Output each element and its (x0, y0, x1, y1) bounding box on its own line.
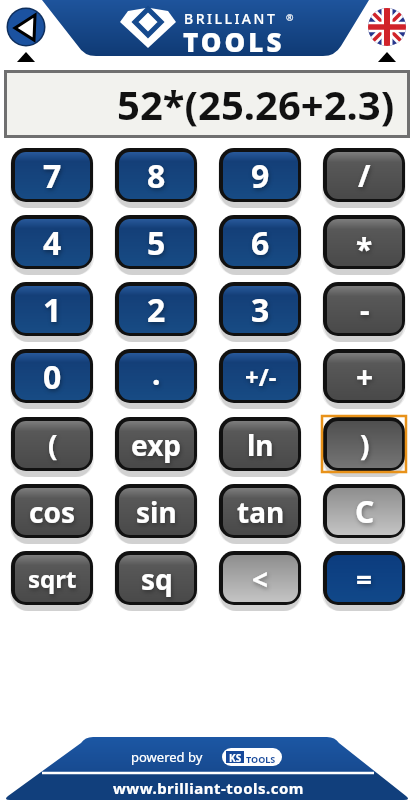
staticText: 8 (147, 154, 166, 198)
staticText: ® (286, 11, 294, 23)
staticText: exp (131, 426, 182, 464)
staticText: C (355, 491, 375, 532)
staticText: TOOLS (183, 24, 285, 59)
staticText: . (152, 353, 161, 394)
staticText: + (356, 356, 374, 397)
staticText: BRILLIANT (184, 9, 278, 28)
staticText: = (356, 560, 373, 598)
staticText: powered by (131, 748, 203, 766)
staticText: sq (141, 560, 173, 598)
staticText: < (252, 560, 269, 598)
staticText: 52*(25.26+2.3) (117, 77, 395, 131)
staticText: 4 (43, 221, 62, 265)
staticText: sqrt (28, 562, 77, 595)
staticText: cos (29, 493, 76, 531)
staticText: 1 (43, 288, 62, 332)
staticText: +/- (245, 360, 277, 393)
staticText: TOOLS (246, 753, 276, 765)
staticText: ) (360, 426, 370, 464)
staticText: ( (48, 426, 58, 464)
staticText: sin (136, 493, 177, 531)
staticText: / (358, 155, 371, 196)
staticText: 2 (147, 288, 166, 332)
staticText: 0 (43, 355, 62, 399)
staticText: 3 (251, 288, 270, 332)
staticText: 7 (43, 154, 62, 198)
staticText: * (356, 228, 373, 266)
staticText: 6 (251, 221, 270, 265)
staticText: www.brilliant-tools.com (113, 778, 304, 798)
staticText: - (360, 289, 370, 330)
staticText: tan (237, 493, 285, 531)
staticText: 5 (147, 221, 166, 265)
staticText: 9 (251, 154, 270, 198)
staticText: ln (247, 426, 274, 464)
staticText: KS (229, 751, 242, 765)
